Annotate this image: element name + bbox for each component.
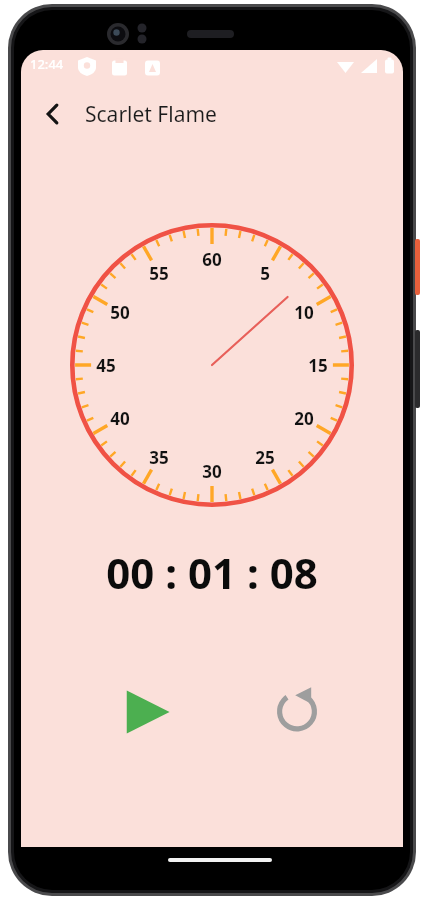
staticText: 40: [110, 407, 130, 430]
staticText: 50: [110, 301, 130, 324]
staticText: 5: [260, 262, 270, 285]
staticText: 35: [149, 446, 169, 469]
staticText: Scarlet Flame: [85, 100, 217, 129]
button[interactable]: Play: [115, 680, 179, 744]
staticText: 15: [308, 354, 328, 377]
staticText: 30: [202, 460, 222, 483]
button[interactable]: Back: [30, 91, 76, 137]
staticText: 25: [255, 446, 275, 469]
staticText: 10: [294, 301, 314, 324]
staticText: 60: [202, 248, 222, 271]
staticText: 55: [149, 262, 169, 285]
staticText: 00 : 01 : 08: [106, 544, 318, 601]
button[interactable]: Reset: [265, 678, 329, 742]
staticText: 12:44: [30, 55, 64, 73]
staticText: 20: [294, 407, 314, 430]
staticText: 45: [96, 354, 116, 377]
